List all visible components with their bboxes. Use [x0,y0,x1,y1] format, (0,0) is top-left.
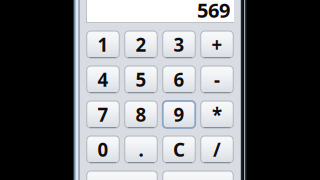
staticText: - [214,67,220,92]
staticText: 5 [135,67,146,92]
staticText: + [211,32,222,57]
button[interactable]: 5 [125,66,157,93]
button[interactable] [87,171,157,180]
button[interactable]: + [201,31,233,58]
staticText: 3 [173,32,184,57]
staticText: * [212,102,222,127]
button[interactable] [163,171,233,180]
staticText: 2 [135,32,146,57]
button[interactable]: 7 [87,101,119,128]
staticText: 8 [135,102,146,127]
button[interactable]: C [163,136,195,163]
staticText: 1 [97,32,108,57]
staticText: 0 [97,137,108,162]
button[interactable]: - [201,66,233,93]
button[interactable]: 9 [163,101,195,128]
button[interactable]: 0 [87,136,119,163]
staticText: / [213,137,221,162]
button[interactable]: 3 [163,31,195,58]
staticText: 6 [173,67,184,92]
staticText: 9 [173,102,184,127]
staticText: 4 [97,67,108,92]
staticText: C [173,137,185,162]
button[interactable]: 1 [87,31,119,58]
button[interactable]: 4 [87,66,119,93]
button[interactable]: 8 [125,101,157,128]
button[interactable]: . [125,136,157,163]
button[interactable]: 2 [125,31,157,58]
staticText: . [138,137,143,162]
button[interactable]: / [201,136,233,163]
staticText: 569 [197,0,230,23]
button[interactable]: * [201,101,233,128]
button[interactable]: 6 [163,66,195,93]
staticText: 7 [97,102,108,127]
